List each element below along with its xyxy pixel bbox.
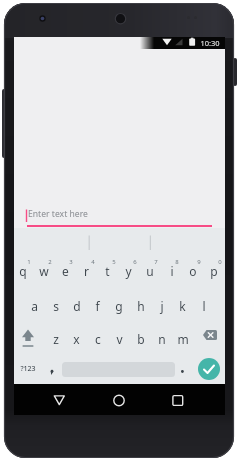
- button[interactable]: [45, 386, 73, 414]
- button[interactable]: d: [66, 294, 87, 318]
- button[interactable]: [42, 358, 62, 380]
- staticText: w: [39, 263, 49, 279]
- button[interactable]: g: [108, 294, 129, 318]
- staticText: x: [73, 331, 80, 347]
- button[interactable]: y: [118, 259, 139, 283]
- staticText: a: [31, 298, 38, 314]
- staticText: 6: [133, 258, 137, 266]
- button[interactable]: n: [151, 327, 172, 351]
- button[interactable]: [16, 325, 42, 350]
- button[interactable]: [198, 358, 220, 380]
- staticText: n: [158, 331, 166, 347]
- staticText: e: [62, 263, 69, 279]
- staticText: 5: [112, 258, 116, 266]
- staticText: h: [137, 298, 145, 314]
- staticText: 0: [218, 258, 222, 266]
- staticText: v: [116, 331, 123, 347]
- button[interactable]: q: [12, 259, 33, 283]
- staticText: q: [19, 263, 27, 279]
- button[interactable]: u: [139, 259, 160, 283]
- button[interactable]: [25, 202, 214, 228]
- staticText: m: [177, 331, 189, 347]
- button[interactable]: x: [66, 327, 87, 351]
- button[interactable]: i: [161, 259, 182, 283]
- staticText: i: [170, 263, 174, 279]
- button[interactable]: r: [76, 259, 97, 283]
- staticText: r: [84, 263, 89, 279]
- button[interactable]: e: [55, 259, 76, 283]
- staticText: 3: [69, 258, 73, 266]
- staticText: k: [179, 298, 186, 314]
- button[interactable]: t: [97, 259, 118, 283]
- staticText: o: [189, 263, 197, 279]
- staticText: b: [137, 331, 145, 347]
- button[interactable]: [172, 358, 192, 380]
- staticText: 8: [175, 258, 179, 266]
- button[interactable]: b: [130, 327, 151, 351]
- button[interactable]: w: [33, 259, 54, 283]
- staticText: c: [95, 331, 101, 347]
- staticText: s: [53, 298, 59, 314]
- staticText: Enter text here: [28, 208, 88, 220]
- button[interactable]: [198, 325, 224, 350]
- button[interactable]: m: [172, 327, 193, 351]
- staticText: 10:30: [200, 38, 220, 48]
- staticText: z: [53, 331, 59, 347]
- staticText: ?123: [20, 364, 36, 374]
- staticText: 2: [48, 258, 52, 266]
- staticText: 4: [91, 258, 95, 266]
- staticText: y: [125, 263, 132, 279]
- button[interactable]: f: [87, 294, 108, 318]
- staticText: j: [160, 298, 164, 314]
- staticText: g: [115, 298, 123, 314]
- button[interactable]: o: [182, 259, 203, 283]
- button[interactable]: [105, 386, 133, 414]
- button[interactable]: z: [45, 327, 66, 351]
- button[interactable]: c: [87, 327, 108, 351]
- button[interactable]: k: [172, 294, 193, 318]
- staticText: 7: [154, 258, 158, 266]
- staticText: 9: [197, 258, 201, 266]
- button[interactable]: [163, 386, 191, 414]
- button[interactable]: ?123: [15, 358, 41, 380]
- button[interactable]: p: [203, 259, 224, 283]
- button[interactable]: j: [151, 294, 172, 318]
- staticText: d: [73, 298, 81, 314]
- button[interactable]: h: [130, 294, 151, 318]
- button[interactable]: s: [45, 294, 66, 318]
- staticText: 1: [27, 258, 31, 266]
- staticText: p: [210, 263, 218, 279]
- button[interactable]: a: [24, 294, 45, 318]
- button[interactable]: v: [109, 327, 130, 351]
- staticText: u: [146, 263, 154, 279]
- staticText: t: [105, 263, 110, 279]
- staticText: f: [95, 298, 100, 314]
- button[interactable]: l: [193, 294, 214, 318]
- staticText: l: [202, 298, 206, 314]
